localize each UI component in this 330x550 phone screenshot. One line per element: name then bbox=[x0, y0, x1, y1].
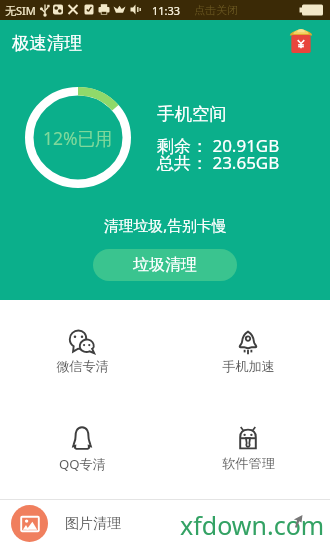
staticText: 剩余： 20.91GB 总共： 23.65GB bbox=[157, 134, 280, 174]
staticText: 11:33 bbox=[152, 3, 181, 18]
staticText: 垃圾清理 bbox=[133, 255, 197, 275]
staticText: 极速清理 bbox=[12, 32, 82, 54]
staticText: 无SIM bbox=[5, 3, 36, 18]
button[interactable]: 红包 bbox=[285, 25, 317, 57]
staticText: 软件管理 bbox=[222, 455, 275, 472]
button[interactable]: 手机加速 bbox=[198, 319, 298, 385]
staticText: 手机加速 bbox=[222, 358, 275, 375]
staticText: 图片清理 bbox=[65, 515, 121, 533]
staticText: 12%已用 bbox=[43, 126, 113, 150]
button[interactable]: QQ专清 bbox=[32, 416, 132, 483]
staticText: 清理垃圾,告别卡慢 bbox=[104, 215, 227, 235]
button[interactable]: 软件管理 bbox=[198, 416, 298, 482]
staticText: QQ专清 bbox=[59, 455, 106, 473]
staticText: 手机空间 bbox=[157, 103, 227, 125]
staticText: xfdown.com bbox=[180, 508, 325, 542]
staticText: 点击关闭 bbox=[194, 3, 238, 17]
button[interactable]: 图片清理 bbox=[11, 505, 121, 542]
button[interactable]: 垃圾清理 bbox=[93, 249, 237, 281]
button[interactable]: 微信专清 bbox=[32, 319, 132, 385]
staticText: 微信专清 bbox=[56, 358, 109, 375]
